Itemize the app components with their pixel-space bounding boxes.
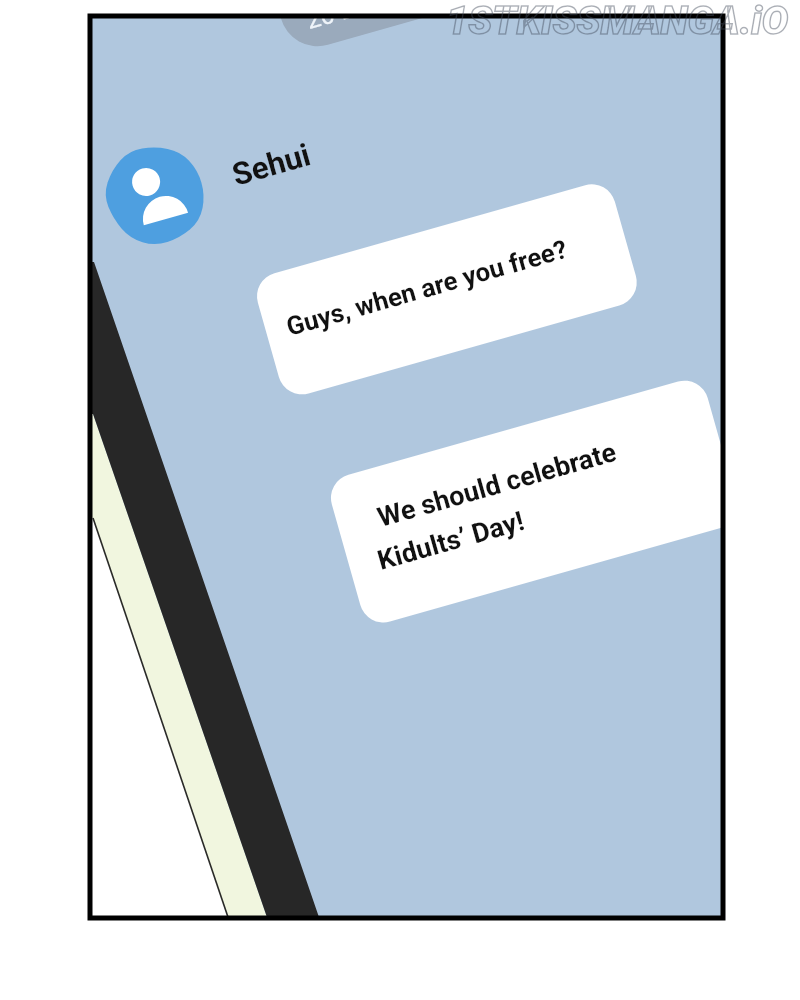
button[interactable]: Chat conversation panel: [0, 0, 800, 1000]
